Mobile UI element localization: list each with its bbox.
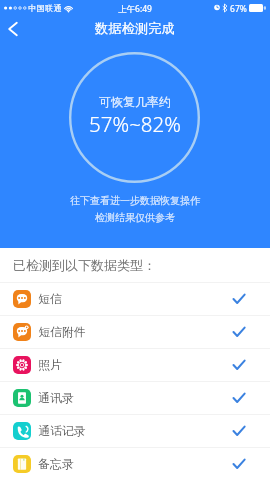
staticText: 数据检测完成 <box>95 20 175 37</box>
staticText: 短信附件 <box>38 325 86 340</box>
staticText: 57%~82% <box>89 110 181 138</box>
staticText: 已检测到以下数据类型： <box>13 257 156 273</box>
staticText: 备忘录 <box>38 457 74 472</box>
staticText: 短信 <box>38 292 62 307</box>
button[interactable]: 短信附件 <box>0 316 270 348</box>
staticText: 照片 <box>38 358 62 373</box>
staticText: 可恢复几率约 <box>99 94 171 109</box>
staticText: 往下查看进一步数据恢复操作 <box>70 194 200 207</box>
button[interactable]: 短信 <box>0 283 270 315</box>
staticText: 检测结果仅供参考 <box>95 211 175 224</box>
button[interactable]: Back <box>0 16 26 42</box>
staticText: 上午6:49 <box>118 3 152 15</box>
button[interactable]: 通讯录 <box>0 382 270 414</box>
staticText: 67% <box>230 3 247 15</box>
button[interactable]: 通话记录 <box>0 415 270 447</box>
button[interactable]: 备忘录 <box>0 448 270 480</box>
staticText: 通讯录 <box>38 391 74 406</box>
button[interactable]: 照片 <box>0 349 270 381</box>
staticText: 中国联通 <box>28 3 62 13</box>
staticText: 通话记录 <box>38 424 86 439</box>
